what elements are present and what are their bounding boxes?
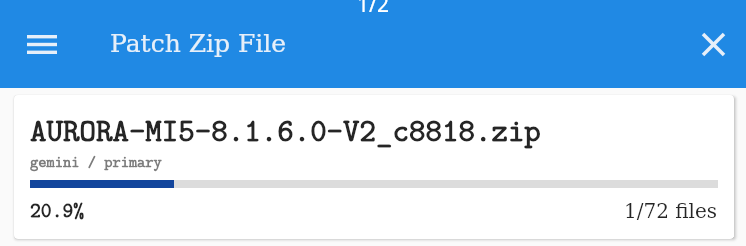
button[interactable]: Open navigation menu — [11, 11, 73, 77]
staticText: 1/2 — [0, 0, 746, 19]
staticText: 20.9% — [30, 196, 85, 224]
staticText: gemini / primary — [30, 151, 162, 172]
staticText: AURORA-MI5-8.1.6.0-V2_c8818.zip — [30, 108, 541, 151]
button[interactable]: AURORA-MI5-8.1.6.0-V2_c8818.zip — [14, 95, 734, 239]
staticText: Patch Zip File — [110, 29, 287, 58]
button[interactable]: Close — [682, 13, 744, 75]
staticText: 1/72 files — [624, 199, 718, 222]
